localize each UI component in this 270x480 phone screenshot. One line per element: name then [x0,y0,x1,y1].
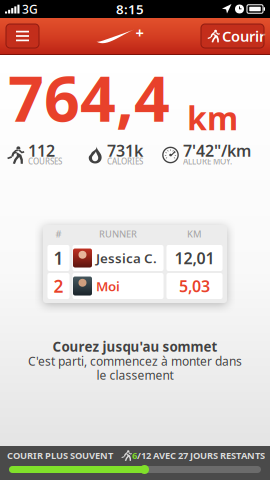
staticText: 764,4 [8,56,170,139]
staticText: 5,03 [179,275,210,297]
staticText: ALLURE MOY. [183,156,232,167]
staticText: km [187,96,238,139]
staticText: C'est parti, commencez à monter dans [28,353,242,369]
staticText: COURIR PLUS SOUVENT [7,449,113,462]
staticText: 2 [53,274,63,297]
button[interactable]: COURIR PLUS SOUVENT [0,446,270,480]
staticText: 8:15 [116,0,144,18]
staticText: COURSES [28,156,62,167]
staticText: 6 [132,449,137,462]
staticText: 3G [22,1,38,17]
staticText: le classement [96,367,173,383]
staticText: # [55,228,61,240]
staticText: Jessica C. [96,249,157,267]
button[interactable]: Courir [201,24,264,48]
staticText: 7'42"/km [183,140,251,161]
staticText: 112 [28,140,55,161]
button[interactable]: Menu [6,24,39,48]
button[interactable]: 1 [48,243,222,271]
staticText: RUNNER [99,228,137,240]
button[interactable]: 2 [48,271,222,299]
staticText: 12,01 [174,247,214,269]
staticText: + [135,23,143,42]
staticText: 1 [53,246,63,269]
staticText: KM [187,228,202,240]
staticText: 731k [107,140,143,161]
staticText: /12 AVEC 27 JOURS RESTANTS [137,449,265,462]
staticText: CALORIES [107,156,143,167]
staticText: Moi [96,277,120,295]
staticText: Courez jusqu'au sommet [52,338,217,355]
staticText: Courir [222,26,265,46]
